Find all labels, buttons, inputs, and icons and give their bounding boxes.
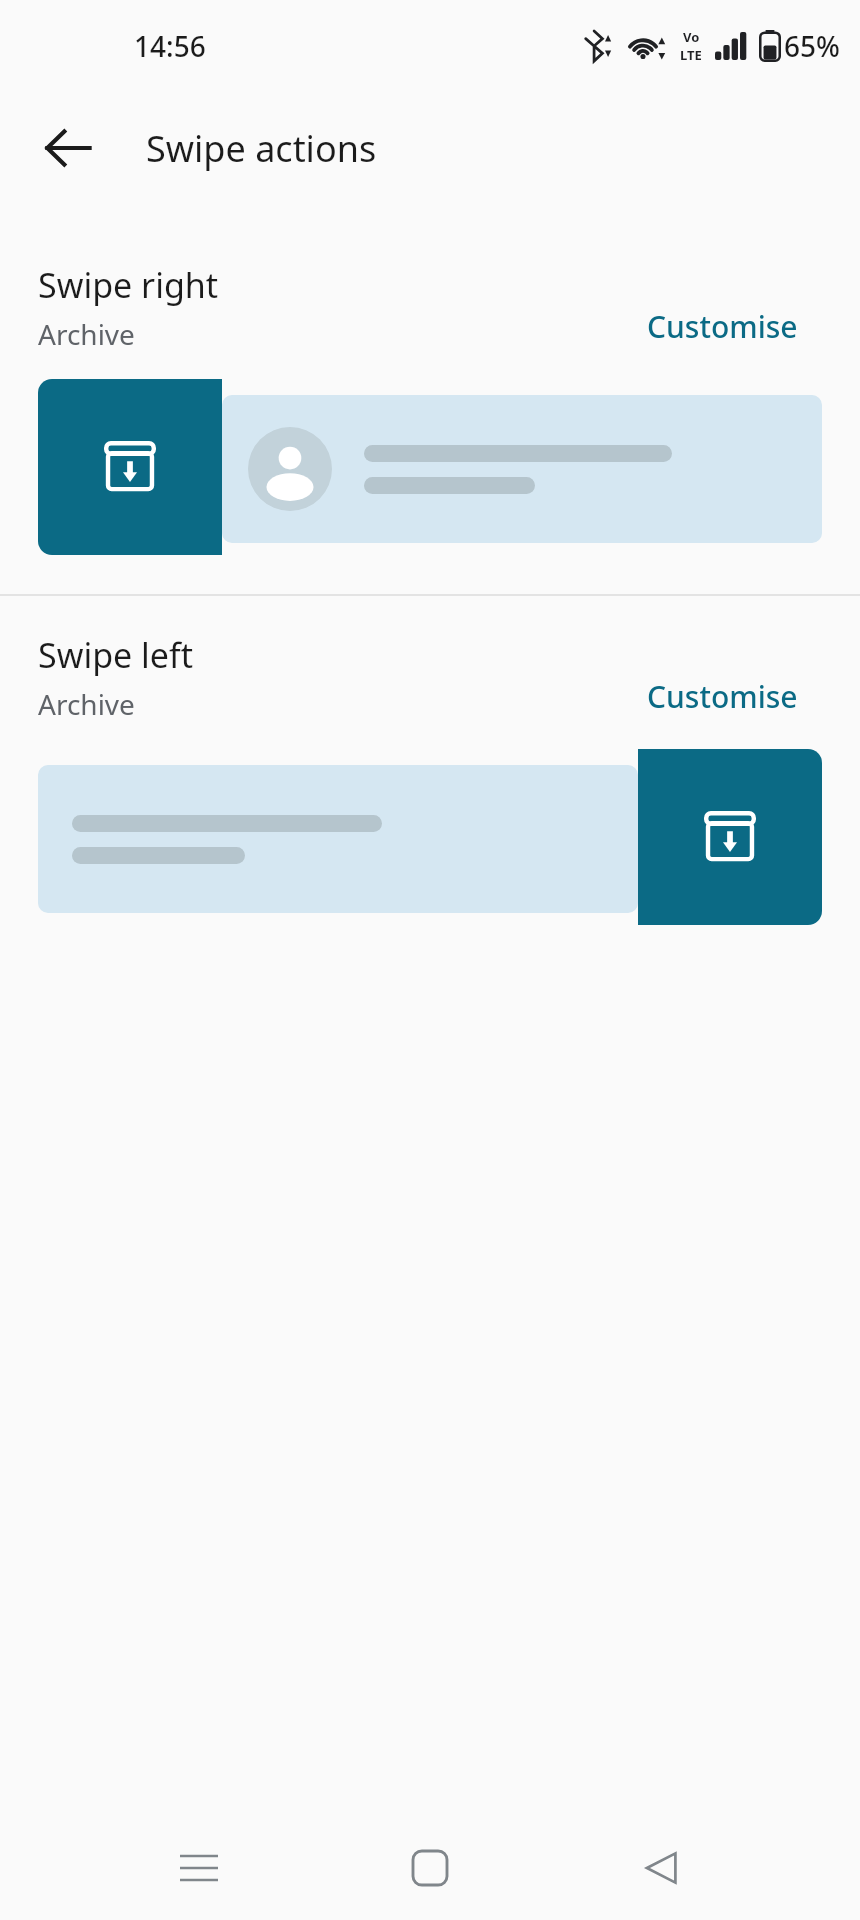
staticText: Vo [683, 28, 700, 46]
staticText: 65% [784, 27, 840, 65]
staticText: Customise [647, 306, 798, 347]
staticText: LTE [680, 46, 702, 64]
staticText: 14:56 [134, 27, 206, 65]
staticText: Archive [38, 685, 135, 723]
staticText: Swipe actions [146, 124, 377, 173]
staticText: Customise [647, 676, 798, 717]
button[interactable]: Customise [641, 300, 804, 353]
staticText: Swipe right [38, 262, 219, 308]
button[interactable]: Navigate up [24, 104, 112, 192]
button[interactable]: Archive [38, 379, 222, 555]
staticText: Swipe left [38, 632, 194, 678]
button[interactable]: Customise [641, 670, 804, 723]
staticText: Archive [38, 315, 135, 353]
button[interactable]: Archive [638, 749, 822, 925]
button[interactable]: Home [384, 1822, 476, 1914]
button[interactable]: Back [615, 1822, 707, 1914]
button[interactable]: Recent apps [153, 1822, 245, 1914]
